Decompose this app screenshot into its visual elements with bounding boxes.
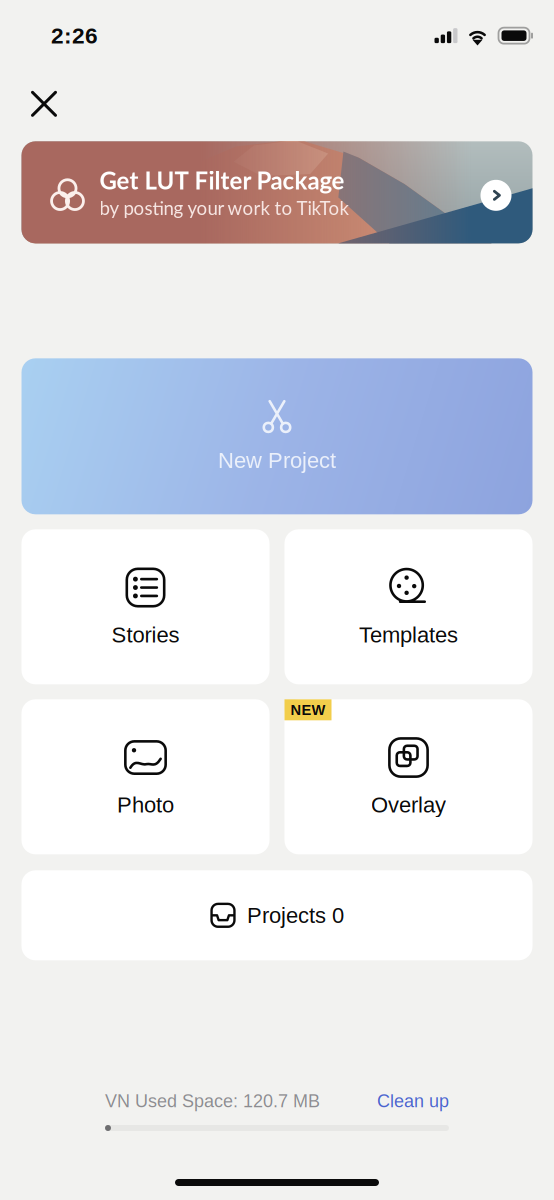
- button[interactable]: Overlay: [284, 699, 532, 854]
- button[interactable]: Photo: [21, 699, 269, 854]
- staticText: NEW: [290, 702, 325, 718]
- button[interactable]: Close: [19, 79, 69, 128]
- button[interactable]: Get LUT Filter Package: [21, 141, 532, 243]
- staticText: Get LUT Filter Package: [99, 166, 344, 194]
- staticText: Templates: [359, 622, 458, 647]
- staticText: Overlay: [371, 792, 446, 817]
- staticText: 2:26: [51, 23, 98, 48]
- staticText: Projects 0: [247, 903, 344, 928]
- button[interactable]: Templates: [284, 529, 532, 684]
- staticText: Stories: [111, 622, 179, 647]
- staticText: New Project: [218, 448, 336, 473]
- button[interactable]: New Project: [21, 358, 532, 514]
- staticText: VN Used Space: 120.7 MB: [105, 1091, 320, 1111]
- button[interactable]: Projects 0: [21, 870, 532, 960]
- button[interactable]: Clean up: [377, 1091, 449, 1111]
- staticText: Photo: [117, 792, 174, 817]
- button[interactable]: Stories: [21, 529, 269, 684]
- staticText: by posting your work to TikTok: [99, 196, 348, 219]
- staticText: Clean up: [377, 1091, 449, 1111]
